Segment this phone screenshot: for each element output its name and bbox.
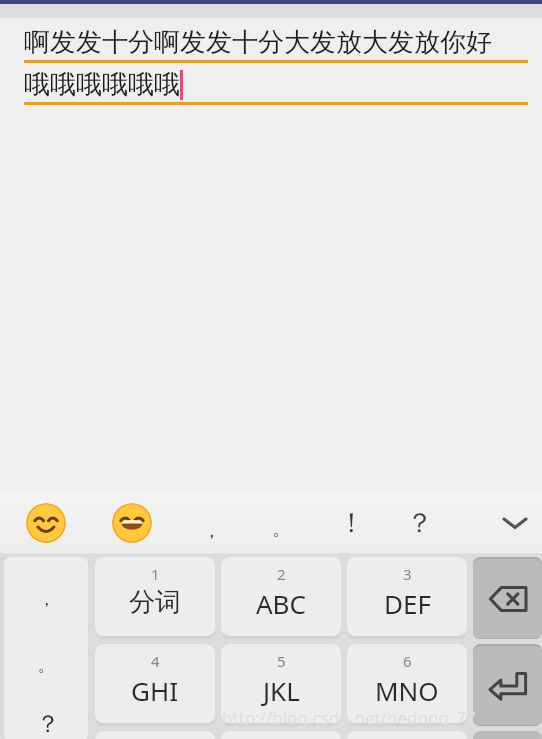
- button[interactable]: 7: [95, 731, 215, 739]
- staticText: ！: [338, 506, 365, 540]
- staticText: 6: [403, 651, 412, 671]
- button[interactable]: 1: [95, 557, 215, 639]
- staticText: 4: [151, 651, 160, 671]
- staticText: 2: [277, 564, 286, 584]
- button[interactable]: Smiling face emoji: [26, 503, 66, 543]
- staticText: MNO: [375, 673, 439, 708]
- button[interactable]: 2: [221, 557, 341, 639]
- staticText: 哦哦哦哦哦哦: [24, 68, 180, 101]
- staticText: ，: [202, 519, 221, 543]
- staticText: 。: [272, 517, 291, 541]
- staticText: 1: [151, 564, 160, 584]
- button[interactable]: 5: [221, 644, 341, 726]
- staticText: 3: [403, 564, 412, 584]
- staticText: DEF: [384, 586, 431, 621]
- staticText: ？: [406, 506, 433, 540]
- button[interactable]: 3: [347, 557, 467, 639]
- staticText: JKL: [263, 673, 300, 708]
- button[interactable]: Grinning face emoji: [112, 503, 152, 543]
- button[interactable]: Backspace: [473, 557, 542, 639]
- staticText: 啊发发十分啊发发十分大发放大发放你好: [24, 26, 492, 59]
- button[interactable]: 6: [347, 644, 467, 726]
- button[interactable]: 。: [258, 492, 304, 554]
- staticText: ？: [36, 709, 60, 739]
- button[interactable]: 8: [221, 731, 341, 739]
- button[interactable]: ！: [328, 492, 374, 554]
- button[interactable]: Hide keyboard: [498, 492, 532, 554]
- staticText: 分词: [129, 586, 181, 619]
- staticText: 5: [277, 651, 286, 671]
- button[interactable]: 9: [347, 731, 467, 739]
- staticText: ，: [38, 589, 55, 610]
- button[interactable]: Symbols: [473, 731, 542, 739]
- button[interactable]: 4: [95, 644, 215, 726]
- staticText: GHI: [131, 673, 179, 708]
- button[interactable]: ，: [4, 557, 88, 739]
- staticText: 。: [38, 655, 55, 676]
- button[interactable]: ？: [396, 492, 442, 554]
- button[interactable]: ，: [188, 492, 234, 554]
- button[interactable]: Enter: [473, 644, 542, 726]
- staticText: ABC: [256, 586, 306, 621]
- staticText: http://blog.csdn.net/hedong_77: [222, 706, 476, 729]
